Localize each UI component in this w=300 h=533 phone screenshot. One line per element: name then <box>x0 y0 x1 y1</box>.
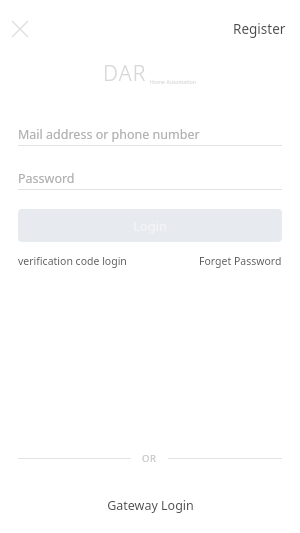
button[interactable]: Close <box>8 17 32 41</box>
staticText: Login <box>133 217 168 235</box>
staticText: Register <box>233 20 286 38</box>
staticText: Password <box>18 170 75 187</box>
staticText: DAR <box>103 59 147 88</box>
staticText: verification code login <box>18 254 127 268</box>
staticText: Forget Password <box>199 254 282 268</box>
button[interactable]: Gateway Login <box>99 493 202 518</box>
button[interactable]: Forget Password <box>199 252 282 270</box>
staticText: Home Automation <box>150 79 197 86</box>
button[interactable]: Password <box>18 168 282 190</box>
button[interactable]: Mail address or phone number <box>18 124 282 146</box>
button[interactable]: Register <box>229 16 290 42</box>
staticText: Gateway Login <box>107 497 194 514</box>
staticText: OR <box>142 452 157 465</box>
staticText: Mail address or phone number <box>18 126 200 143</box>
button[interactable]: verification code login <box>18 252 127 270</box>
